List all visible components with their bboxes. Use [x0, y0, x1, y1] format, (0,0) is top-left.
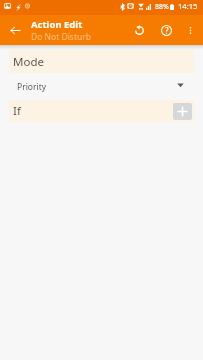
staticText: If — [13, 103, 21, 119]
button[interactable]: Help — [155, 15, 178, 45]
button[interactable]: Priority — [0, 73, 203, 100]
button[interactable]: More options — [178, 15, 203, 45]
staticText: Do Not Disturb — [31, 31, 91, 43]
staticText: 14:15 — [178, 1, 198, 11]
button[interactable]: Undo — [123, 15, 155, 45]
button[interactable]: Back — [0, 15, 31, 45]
staticText: 88% — [155, 2, 169, 12]
button[interactable]: Add condition — [173, 103, 192, 120]
staticText: Mode — [13, 54, 44, 70]
button[interactable]: Mode — [9, 50, 194, 73]
staticText: ? — [165, 25, 169, 36]
staticText: Priority — [17, 81, 47, 93]
staticText: Action Edit — [31, 18, 83, 31]
